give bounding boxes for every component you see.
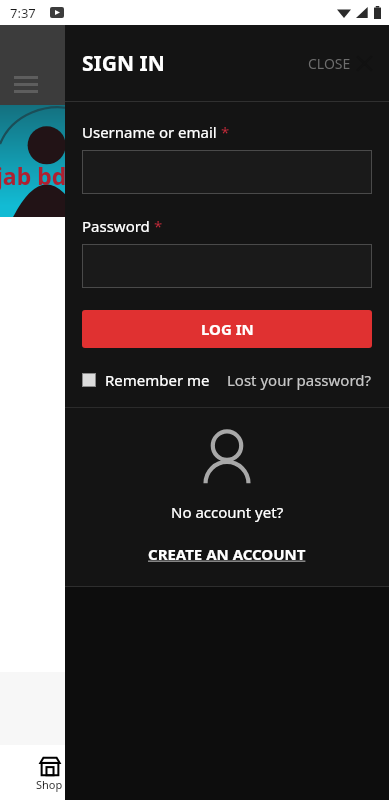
button[interactable]: Lost your password? bbox=[227, 370, 372, 390]
staticText: CREATE AN ACCOUNT bbox=[148, 544, 306, 564]
button[interactable]: LOG IN bbox=[82, 310, 372, 348]
staticText: * bbox=[154, 216, 163, 236]
staticText: Remember me bbox=[105, 370, 210, 390]
button[interactable]: CREATE AN ACCOUNT bbox=[148, 544, 306, 564]
button[interactable] bbox=[82, 150, 372, 194]
staticText: SIGN IN bbox=[82, 49, 165, 78]
staticText: Password bbox=[82, 216, 150, 236]
button[interactable]: Shop bbox=[36, 755, 63, 792]
staticText: No account yet? bbox=[171, 502, 284, 522]
button[interactable]: CLOSE bbox=[302, 48, 377, 79]
staticText: jab bd bbox=[0, 160, 67, 191]
button[interactable]: Remember me bbox=[82, 370, 210, 390]
staticText: You don't have permission to bbox=[92, 312, 297, 332]
staticText: CLOSE bbox=[308, 54, 351, 73]
staticText: find a page bbox=[155, 338, 235, 358]
staticText: Lost your password? bbox=[227, 370, 372, 390]
staticText: Username or email bbox=[82, 122, 217, 142]
staticText: Shop bbox=[36, 777, 63, 792]
staticText: * bbox=[221, 122, 230, 142]
button[interactable] bbox=[82, 244, 372, 288]
staticText: 7:37 bbox=[10, 4, 36, 22]
staticText: LOG IN bbox=[201, 319, 254, 339]
